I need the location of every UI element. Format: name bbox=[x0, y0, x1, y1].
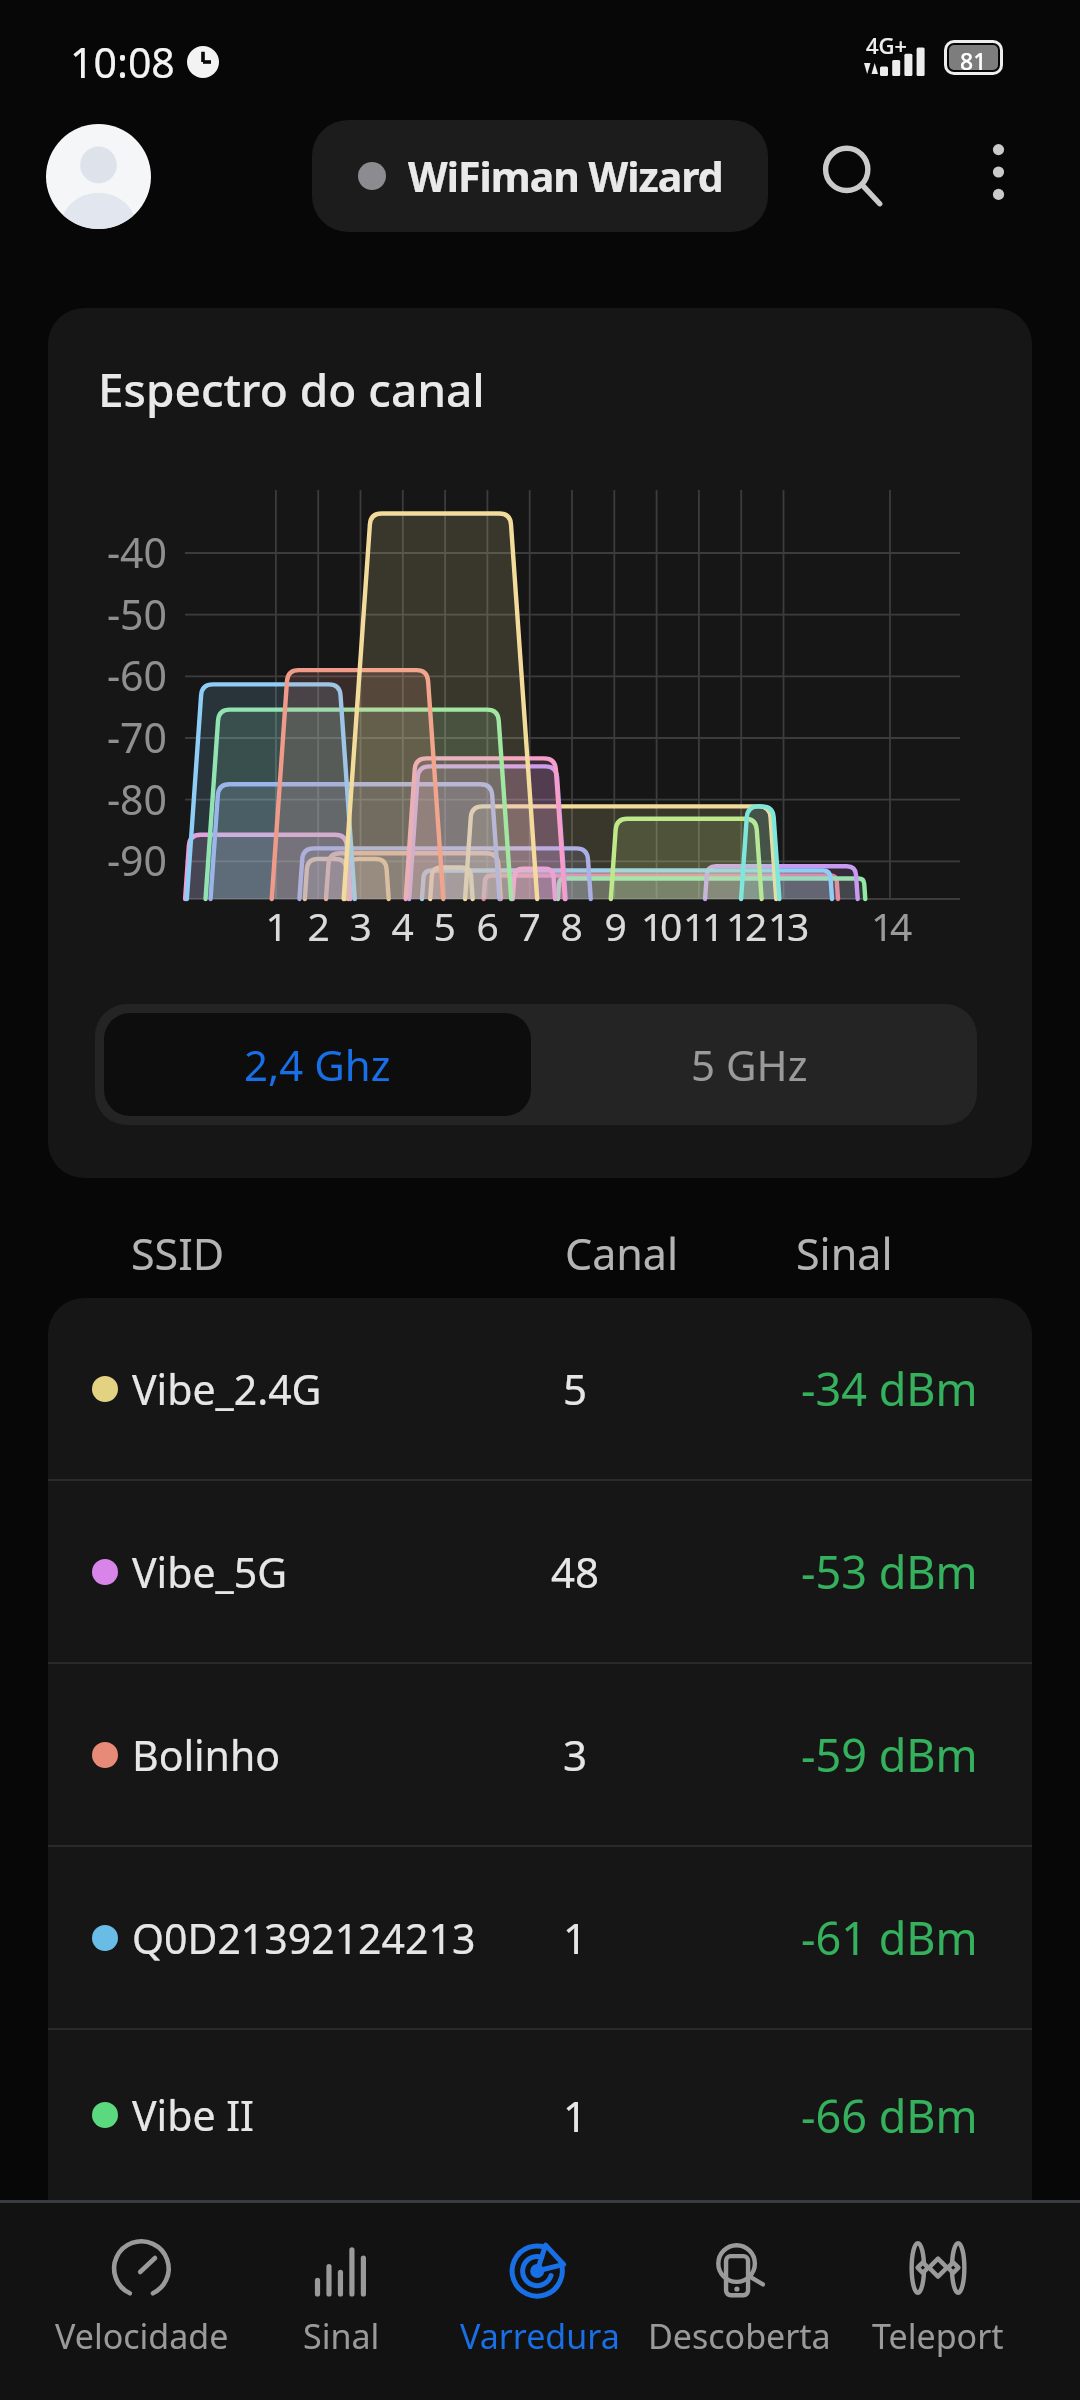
staticText: WiFiman Wizard bbox=[408, 148, 723, 204]
staticText: -34 dBm bbox=[801, 1358, 978, 1419]
staticText: -90 bbox=[86, 832, 167, 888]
staticText: -40 bbox=[86, 524, 167, 580]
staticText: -66 dBm bbox=[801, 2085, 978, 2146]
button[interactable]: Bolinho bbox=[48, 1664, 1032, 1845]
staticText: Velocidade bbox=[55, 2313, 229, 2359]
button[interactable]: Vibe II bbox=[48, 2030, 1032, 2200]
button[interactable]: WiFiman Wizard bbox=[312, 120, 768, 232]
staticText: 6 bbox=[446, 899, 526, 952]
staticText: 11 bbox=[662, 899, 742, 952]
button[interactable]: Teleport bbox=[839, 2203, 1037, 2400]
staticText: 5 bbox=[515, 1360, 635, 1417]
button[interactable]: Descoberta bbox=[640, 2203, 838, 2400]
staticText: 10:08 bbox=[70, 34, 175, 90]
staticText: 2,4 Ghz bbox=[244, 1036, 391, 1093]
staticText: -53 dBm bbox=[801, 1541, 978, 1602]
staticText: 1 bbox=[515, 2087, 635, 2144]
button[interactable]: Search bbox=[800, 124, 904, 228]
staticText: Canal bbox=[565, 1224, 679, 1283]
staticText: 9 bbox=[574, 899, 654, 952]
staticText: 81 bbox=[960, 45, 987, 70]
button[interactable]: Varredura bbox=[441, 2203, 639, 2400]
staticText: -61 dBm bbox=[801, 1907, 978, 1968]
staticText: Bolinho bbox=[132, 1727, 281, 1783]
staticText: -50 bbox=[86, 586, 167, 642]
button[interactable]: Q0D21392124213 bbox=[48, 1847, 1032, 2028]
staticText: Vibe_5G bbox=[132, 1544, 288, 1600]
staticText: SSID bbox=[131, 1224, 225, 1283]
staticText: -59 dBm bbox=[801, 1724, 978, 1785]
staticText: 48 bbox=[515, 1543, 635, 1600]
staticText: 2 bbox=[277, 899, 357, 952]
button[interactable]: 5 GHz bbox=[531, 1013, 968, 1116]
staticText: 10 bbox=[620, 899, 700, 952]
staticText: 3 bbox=[319, 899, 399, 952]
button[interactable]: Velocidade bbox=[43, 2203, 241, 2400]
staticText: Varredura bbox=[460, 2313, 620, 2359]
button[interactable]: Profile bbox=[46, 124, 151, 229]
staticText: Vibe_2.4G bbox=[132, 1361, 322, 1417]
staticText: -70 bbox=[86, 709, 167, 765]
button[interactable]: Vibe_5G bbox=[48, 1481, 1032, 1662]
staticText: 1 bbox=[235, 899, 315, 952]
staticText: 7 bbox=[488, 899, 568, 952]
staticText: -60 bbox=[86, 647, 167, 703]
button[interactable]: 2,4 Ghz bbox=[104, 1013, 531, 1116]
staticText: Teleport bbox=[872, 2313, 1004, 2359]
staticText: 4 bbox=[361, 899, 441, 952]
staticText: Sinal bbox=[303, 2313, 380, 2359]
staticText: -80 bbox=[86, 771, 167, 827]
staticText: 4G+ bbox=[866, 30, 908, 60]
button[interactable]: Sinal bbox=[242, 2203, 440, 2400]
staticText: Descoberta bbox=[648, 2313, 831, 2359]
staticText: Sinal bbox=[796, 1224, 893, 1283]
staticText: 1 bbox=[515, 1909, 635, 1966]
button[interactable]: Vibe_2.4G bbox=[48, 1298, 1032, 1479]
staticText: 3 bbox=[515, 1726, 635, 1783]
staticText: 12 bbox=[705, 899, 785, 952]
staticText: Vibe II bbox=[132, 2087, 254, 2143]
staticText: 14 bbox=[850, 899, 930, 952]
staticText: 8 bbox=[530, 899, 610, 952]
staticText: Espectro do canal bbox=[98, 358, 485, 421]
staticText: 5 bbox=[403, 899, 483, 952]
button[interactable]: More options bbox=[950, 124, 1046, 220]
staticText: 13 bbox=[747, 899, 827, 952]
staticText: Q0D21392124213 bbox=[132, 1910, 476, 1966]
staticText: 5 GHz bbox=[691, 1036, 808, 1093]
